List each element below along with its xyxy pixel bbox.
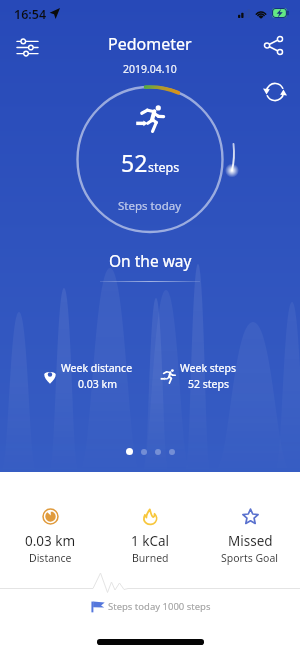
- button[interactable]: 1 kCal: [100, 508, 200, 565]
- button[interactable]: Share: [252, 24, 294, 66]
- staticText: On the way: [109, 250, 192, 271]
- staticText: 0.03 km: [25, 532, 76, 550]
- staticText: steps: [148, 159, 180, 176]
- button[interactable]: Refresh: [255, 72, 295, 112]
- button[interactable]: [155, 449, 161, 455]
- button[interactable]: Week steps: [160, 361, 236, 391]
- button[interactable]: Settings: [6, 26, 48, 68]
- staticText: Missed: [228, 532, 273, 550]
- staticText: Burned: [132, 551, 169, 565]
- staticText: 0.03 km: [78, 377, 117, 391]
- button[interactable]: Missed: [200, 508, 300, 565]
- staticText: Distance: [29, 551, 72, 565]
- staticText: Week distance: [61, 361, 133, 375]
- staticText: Steps today: [118, 198, 182, 214]
- button[interactable]: [169, 449, 175, 455]
- staticText: Sports Goal: [221, 551, 279, 565]
- staticText: Week steps: [180, 361, 236, 375]
- staticText: Steps today 1000 steps: [108, 600, 211, 613]
- staticText: 52: [121, 147, 148, 178]
- staticText: 1 kCal: [131, 532, 170, 550]
- button[interactable]: [126, 448, 133, 455]
- button[interactable]: 0.03 km: [0, 508, 100, 565]
- button[interactable]: [141, 449, 147, 455]
- staticText: 52 steps: [188, 377, 229, 391]
- staticText: 2019.04.10: [123, 62, 177, 76]
- staticText: Pedometer: [108, 33, 192, 55]
- staticText: 16:54: [14, 6, 47, 23]
- button[interactable]: Week distance: [44, 361, 133, 391]
